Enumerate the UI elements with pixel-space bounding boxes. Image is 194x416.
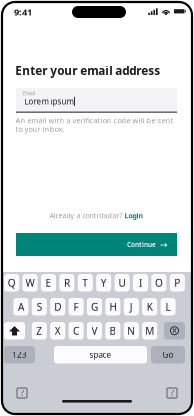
staticText: A bbox=[18, 300, 24, 313]
staticText: Q bbox=[8, 276, 16, 289]
staticText: Login bbox=[124, 211, 143, 220]
button[interactable]: Continue bbox=[16, 233, 177, 256]
staticText: B bbox=[109, 324, 116, 337]
staticText: ? bbox=[170, 388, 173, 398]
button[interactable]: W bbox=[23, 274, 38, 291]
staticText: D bbox=[54, 300, 61, 313]
button[interactable]: O bbox=[151, 274, 166, 291]
button[interactable]: A bbox=[13, 298, 28, 315]
button[interactable]: K bbox=[142, 298, 157, 315]
staticText: F bbox=[74, 300, 79, 313]
staticText: E bbox=[45, 276, 51, 289]
staticText: 9:41 bbox=[14, 6, 32, 18]
staticText: P bbox=[174, 276, 180, 289]
button[interactable]: X bbox=[50, 322, 65, 339]
button[interactable]: C bbox=[69, 322, 84, 339]
staticText: ? bbox=[20, 388, 23, 398]
staticText: Enter your email address bbox=[15, 63, 160, 78]
staticText: Y bbox=[101, 276, 107, 289]
button[interactable]: J bbox=[124, 298, 139, 315]
button[interactable]: E bbox=[41, 274, 56, 291]
staticText: J bbox=[130, 300, 133, 313]
button[interactable]: M bbox=[142, 322, 157, 339]
button[interactable]: Delete bbox=[164, 322, 185, 339]
staticText: V bbox=[91, 324, 97, 337]
button[interactable]: L bbox=[161, 298, 176, 315]
staticText: Email bbox=[23, 90, 35, 97]
staticText: X bbox=[55, 324, 61, 337]
staticText: K bbox=[147, 300, 153, 313]
staticText: Go bbox=[162, 349, 173, 360]
button[interactable]: B bbox=[105, 322, 120, 339]
button[interactable]: Dictation bbox=[167, 388, 177, 398]
staticText: W bbox=[26, 276, 35, 289]
button[interactable]: Already a contributor? bbox=[16, 211, 177, 220]
button[interactable]: R bbox=[59, 274, 74, 291]
staticText: 123 bbox=[12, 349, 27, 360]
staticText: T bbox=[82, 276, 88, 289]
button[interactable]: F bbox=[69, 298, 84, 315]
staticText: R bbox=[64, 276, 70, 289]
button[interactable]: H bbox=[105, 298, 120, 315]
button[interactable]: U bbox=[115, 274, 130, 291]
button[interactable]: Shift bbox=[4, 322, 25, 339]
staticText: U bbox=[119, 276, 126, 289]
button[interactable]: G bbox=[87, 298, 102, 315]
button[interactable]: I bbox=[133, 274, 148, 291]
button[interactable]: Z bbox=[32, 322, 47, 339]
staticText: → bbox=[160, 239, 168, 250]
staticText: G bbox=[91, 300, 98, 313]
staticText: O bbox=[155, 276, 163, 289]
button[interactable]: V bbox=[87, 322, 102, 339]
button[interactable]: Emoji bbox=[17, 388, 27, 398]
staticText: space bbox=[89, 349, 111, 360]
button[interactable]: Go bbox=[151, 346, 185, 363]
button[interactable]: D bbox=[50, 298, 65, 315]
staticText: C bbox=[73, 324, 79, 337]
staticText: Already a contributor? bbox=[49, 211, 124, 220]
staticText: Z bbox=[36, 324, 42, 337]
staticText: An email with a verification code will b… bbox=[15, 116, 173, 125]
button[interactable]: Q bbox=[4, 274, 19, 291]
staticText: H bbox=[109, 300, 116, 313]
staticText: I bbox=[139, 276, 142, 289]
staticText: L bbox=[166, 300, 171, 313]
staticText: Lorem ipsum bbox=[24, 96, 73, 107]
button[interactable]: 123 bbox=[4, 346, 35, 363]
staticText: N bbox=[127, 324, 135, 337]
staticText: Continue bbox=[127, 240, 156, 249]
button[interactable]: S bbox=[32, 298, 47, 315]
staticText: S bbox=[37, 300, 42, 313]
staticText: to your inbox. bbox=[15, 124, 64, 134]
button[interactable]: N bbox=[124, 322, 139, 339]
staticText: M bbox=[145, 324, 154, 337]
button[interactable]: T bbox=[78, 274, 93, 291]
button[interactable]: space bbox=[54, 346, 147, 363]
button[interactable]: P bbox=[170, 274, 185, 291]
button[interactable]: Y bbox=[96, 274, 111, 291]
